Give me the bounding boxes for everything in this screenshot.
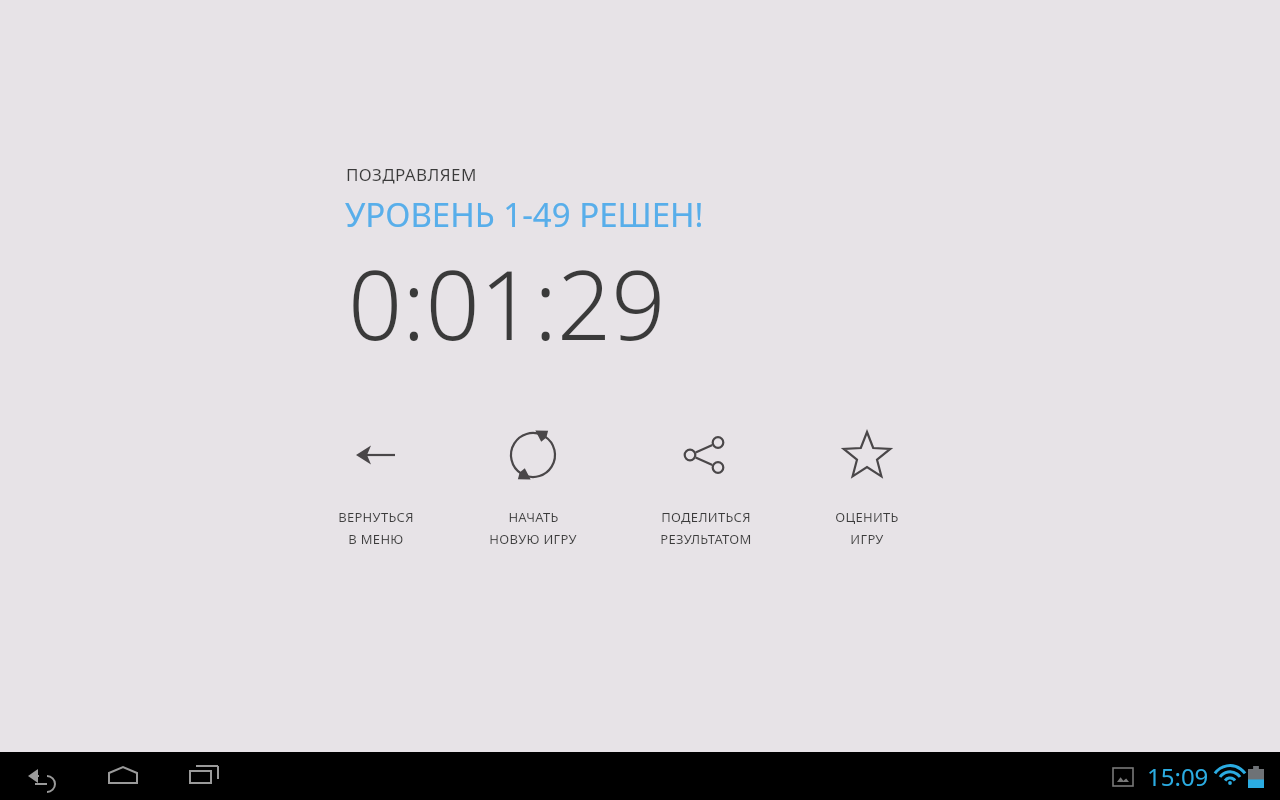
button[interactable]: Вернуться в меню: [306, 428, 446, 548]
button[interactable]: Начать новую игру: [446, 428, 620, 548]
button[interactable]: Home: [95, 752, 151, 800]
staticText: ВЕРНУТЬСЯ: [338, 508, 414, 526]
staticText: ПОЗДРАВЛЯЕМ: [346, 163, 477, 186]
button[interactable]: Поделиться результатом: [620, 428, 792, 548]
button[interactable]: Recent apps: [176, 752, 232, 800]
staticText: 15:09: [1147, 760, 1209, 793]
button[interactable]: Back: [14, 752, 70, 800]
staticText: ПОДЕЛИТЬСЯ: [661, 508, 751, 526]
staticText: УРОВЕНЬ 1-49 РЕШЕН!: [345, 192, 704, 237]
staticText: НАЧАТЬ: [508, 508, 559, 526]
staticText: РЕЗУЛЬТАТОМ: [660, 530, 752, 548]
staticText: ИГРУ: [850, 530, 884, 548]
staticText: ОЦЕНИТЬ: [835, 508, 899, 526]
staticText: НОВУЮ ИГРУ: [489, 530, 577, 548]
button[interactable]: Оценить игру: [792, 428, 942, 548]
staticText: В МЕНЮ: [348, 530, 404, 548]
staticText: 0:01:29: [348, 238, 666, 367]
